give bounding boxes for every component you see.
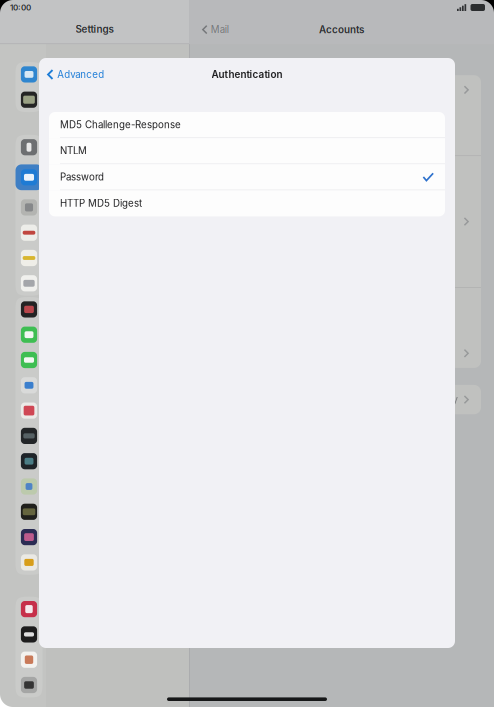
staticText: y — [453, 394, 458, 405]
staticText: Accounts — [319, 24, 364, 35]
staticText: Password — [60, 171, 104, 183]
staticText: Mail — [211, 24, 229, 35]
button[interactable]: Mail — [198, 15, 233, 44]
staticText: MD5 Challenge-Response — [60, 119, 181, 131]
button[interactable]: Password — [49, 164, 445, 190]
staticText: Advanced — [57, 69, 104, 80]
button[interactable]: NTLM — [49, 138, 445, 164]
staticText: Settings — [75, 23, 113, 35]
staticText: NTLM — [60, 145, 87, 157]
button[interactable]: MD5 Challenge-Response — [49, 112, 445, 138]
button[interactable]: HTTP MD5 Digest — [49, 190, 445, 216]
staticText: Authentication — [211, 68, 282, 80]
button[interactable]: Advanced — [39, 58, 112, 91]
staticText: HTTP MD5 Digest — [60, 197, 142, 209]
staticText: 10:00 — [10, 3, 31, 12]
